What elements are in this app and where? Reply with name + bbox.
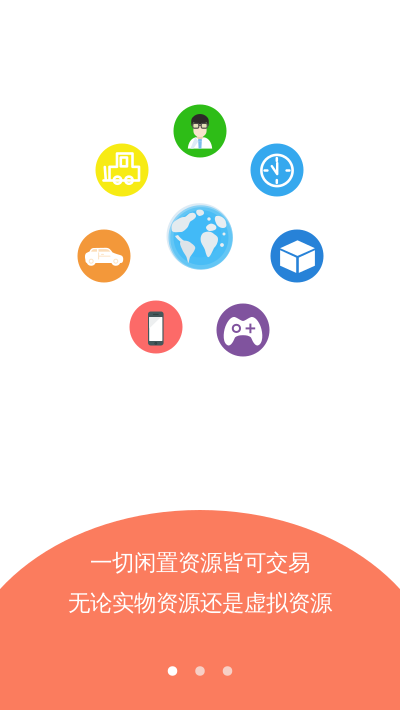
button[interactable]: Logistics	[0, 0, 400, 710]
button[interactable]: Personal services	[0, 0, 400, 710]
button[interactable]: Car sharing	[0, 0, 400, 710]
button[interactable]: Time sharing	[0, 0, 400, 710]
button[interactable]: Goods	[0, 0, 400, 710]
staticText: 无论实物资源还是虚拟资源	[68, 589, 332, 617]
button[interactable]: Games	[0, 0, 400, 710]
button[interactable]: Devices	[0, 0, 400, 710]
staticText: 一切闲置资源皆可交易	[90, 549, 310, 577]
